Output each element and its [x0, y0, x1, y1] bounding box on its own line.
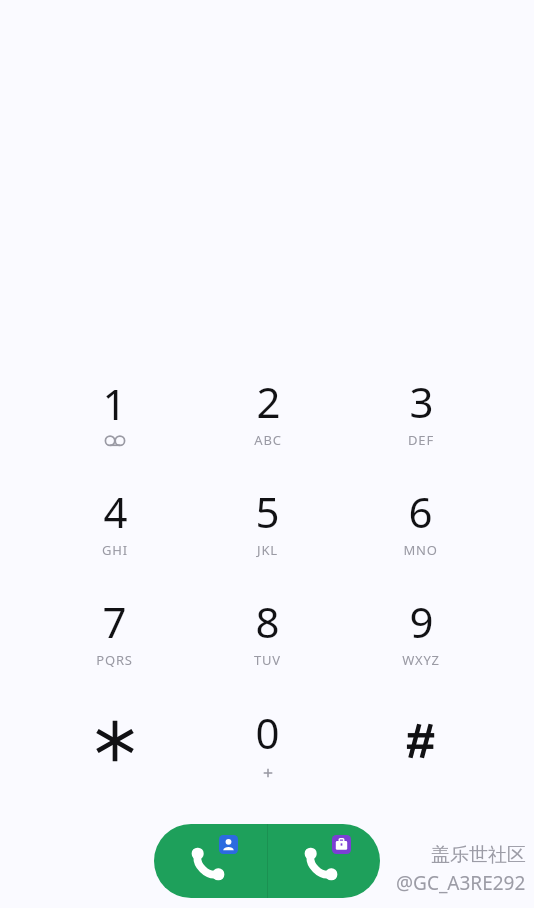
button[interactable]: 9 — [344, 576, 497, 686]
staticText: 4 — [103, 483, 128, 540]
button[interactable]: 3 — [344, 356, 497, 466]
button[interactable]: 6 — [344, 466, 497, 576]
button[interactable]: 1 — [38, 356, 191, 466]
button[interactable]: 8 — [191, 576, 344, 686]
staticText: 1 — [102, 375, 127, 432]
button[interactable]: 5 — [191, 466, 344, 576]
button[interactable]: 4 — [38, 466, 191, 576]
staticText: DEF — [408, 431, 434, 449]
staticText: TUV — [254, 651, 281, 669]
button[interactable]: Call with personal SIM — [154, 824, 267, 898]
staticText: 0 — [255, 704, 280, 761]
staticText: ABC — [254, 431, 282, 449]
staticText: JKL — [257, 541, 278, 559]
button[interactable]: 0 — [191, 686, 344, 796]
staticText: 5 — [255, 483, 280, 540]
staticText: 9 — [409, 593, 434, 650]
button[interactable]: 7 — [38, 576, 191, 686]
staticText: WXYZ — [402, 651, 440, 669]
button[interactable]: Call with work profile — [268, 824, 380, 898]
staticText: MNO — [403, 541, 438, 559]
staticText: @GC_A3RE292 — [396, 870, 526, 896]
staticText: 6 — [408, 483, 433, 540]
staticText: 8 — [255, 593, 280, 650]
staticText: 7 — [102, 593, 127, 650]
button[interactable]: 2 — [191, 356, 344, 466]
staticText: 盖乐世社区 — [431, 843, 526, 867]
staticText: PQRS — [96, 651, 133, 669]
staticText: 3 — [409, 373, 434, 430]
staticText: 2 — [256, 373, 281, 430]
button[interactable]: Star — [38, 686, 191, 796]
button[interactable]: Pound — [344, 686, 497, 796]
staticText: GHI — [102, 541, 128, 559]
